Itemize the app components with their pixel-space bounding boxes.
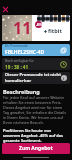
staticText: -45% <box>36 23 42 26</box>
button[interactable]: Ihr Promocode <box>2 44 70 56</box>
staticText: kumulierbar <box>5 78 32 84</box>
staticText: Beschreibung <box>3 88 40 95</box>
button[interactable]: Zum Angebot <box>2 143 70 154</box>
staticText: FBLHEL2SHC-4D <box>5 49 45 56</box>
staticText: Noch verfügbar für <box>5 59 34 63</box>
staticText: Dieser Promocode ist nicht <box>5 72 62 78</box>
staticText: Zum Angebot <box>19 145 53 152</box>
button[interactable]: Schliessen <box>1 5 9 13</box>
staticText: Für jeden Kauf auf unserer Website erhal… <box>3 95 69 125</box>
staticText: Profitieren Sie heute von unserem Angebo… <box>3 128 69 143</box>
staticText: fitbit <box>48 27 62 35</box>
staticText: Ihr Promocode <box>5 44 28 48</box>
staticText: i <box>63 76 65 81</box>
staticText: 19 : 38 : 41 <box>5 64 29 70</box>
button[interactable]: Dieser Promocode ist nicht <box>2 72 70 84</box>
staticText: 11 <box>13 17 32 39</box>
